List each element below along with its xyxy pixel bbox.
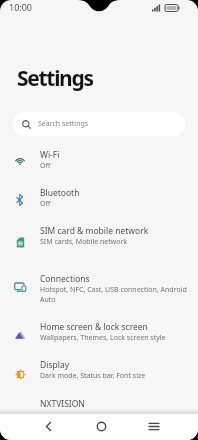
button[interactable]	[132, 413, 198, 440]
button[interactable]: Connections	[0, 270, 198, 318]
button[interactable]: Wi-Fi	[0, 146, 198, 184]
staticText: Settings	[17, 64, 93, 93]
button[interactable]: Display	[0, 356, 198, 394]
staticText: SIM cards, Mobile network	[40, 237, 128, 247]
staticText: Auto	[40, 295, 56, 305]
button[interactable]: Bluetooth	[0, 184, 198, 222]
staticText: Hotspot, NFC, Cast, USB connection, Andr…	[40, 285, 187, 295]
staticText: Connections	[40, 273, 90, 285]
staticText: NXTVISION	[40, 398, 85, 410]
staticText: Off	[40, 161, 51, 171]
staticText: Search settings	[38, 119, 89, 129]
staticText: SIM card & mobile network	[40, 225, 149, 237]
staticText: Wi-Fi	[40, 149, 60, 161]
staticText: Off	[40, 199, 51, 209]
button[interactable]: Home screen & lock screen	[0, 318, 198, 356]
button[interactable]: SIM card & mobile network	[0, 222, 198, 270]
staticText: Dark mode, Status bar, Font size	[40, 371, 146, 381]
staticText: Wallpapers, Themes, Lock screen style	[40, 333, 166, 343]
button[interactable]	[66, 413, 132, 440]
staticText: 10:00	[9, 1, 33, 13]
button[interactable]: Search settings	[13, 112, 185, 136]
button[interactable]: NXTVISION	[0, 394, 198, 413]
staticText: Bluetooth	[40, 187, 80, 199]
button[interactable]	[0, 413, 66, 440]
staticText: Display	[40, 359, 69, 371]
staticText: Home screen & lock screen	[40, 321, 148, 333]
